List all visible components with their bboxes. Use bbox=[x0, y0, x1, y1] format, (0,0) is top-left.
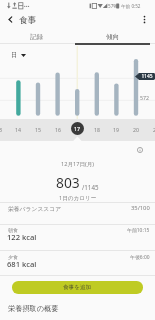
staticText: 1145 bbox=[141, 73, 153, 80]
staticText: 15 bbox=[35, 126, 41, 133]
button[interactable]: 21 bbox=[148, 123, 155, 135]
staticText: 16 bbox=[55, 126, 61, 133]
staticText: 栄養摂取の概要 bbox=[8, 304, 59, 313]
button[interactable]: 19 bbox=[108, 123, 124, 135]
button[interactable]: 17 bbox=[71, 122, 84, 135]
staticText: 18 bbox=[94, 126, 100, 133]
staticText: 17 bbox=[74, 125, 81, 132]
staticText: 栄養バランススコア bbox=[8, 205, 62, 212]
staticText: 13 bbox=[0, 126, 2, 133]
staticText: 122 kcal bbox=[7, 232, 37, 242]
staticText: 午前10:15 bbox=[127, 227, 150, 234]
staticText: 35/100 bbox=[131, 204, 150, 212]
staticText: 朝食 bbox=[8, 227, 18, 233]
staticText: 1日のカロリー bbox=[59, 194, 97, 202]
staticText: 12月17日(月) bbox=[61, 160, 94, 168]
button[interactable]: Info bbox=[135, 145, 145, 155]
button[interactable]: More options bbox=[136, 11, 153, 28]
staticText: 午前 0:52 bbox=[121, 3, 141, 9]
button[interactable]: 15 bbox=[30, 123, 46, 135]
staticText: 21 bbox=[153, 126, 155, 133]
staticText: 14 bbox=[15, 126, 21, 133]
staticText: 19 bbox=[113, 126, 119, 133]
staticText: 夕食 bbox=[8, 254, 18, 260]
staticText: 日 bbox=[11, 51, 18, 59]
button[interactable]: 14 bbox=[10, 123, 26, 135]
staticText: /1145 bbox=[82, 183, 99, 191]
staticText: 食事を追加 bbox=[63, 284, 92, 291]
button[interactable]: 夕食 bbox=[0, 251, 155, 276]
button[interactable]: 16 bbox=[50, 123, 66, 135]
staticText: 57% bbox=[108, 3, 118, 9]
staticText: 803 bbox=[56, 173, 80, 192]
button[interactable]: 13 bbox=[0, 123, 7, 135]
button[interactable]: 朝食 bbox=[0, 224, 155, 249]
button[interactable]: Back bbox=[2, 11, 19, 28]
staticText: 681 kcal bbox=[7, 259, 37, 269]
button[interactable]: 20 bbox=[128, 123, 144, 135]
staticText: 傾向 bbox=[106, 33, 120, 41]
button[interactable]: 18 bbox=[89, 123, 105, 135]
staticText: 20 bbox=[133, 126, 139, 133]
staticText: 食事 bbox=[19, 15, 37, 26]
staticText: 記録 bbox=[30, 33, 44, 41]
button[interactable]: 記録 bbox=[0, 28, 75, 45]
button[interactable]: 食事を追加 bbox=[12, 281, 143, 294]
button[interactable]: 栄養バランススコア bbox=[0, 198, 155, 218]
staticText: 572 bbox=[140, 94, 149, 101]
staticText: 午後6:00 bbox=[130, 254, 150, 261]
button[interactable]: 傾向 bbox=[75, 28, 151, 45]
